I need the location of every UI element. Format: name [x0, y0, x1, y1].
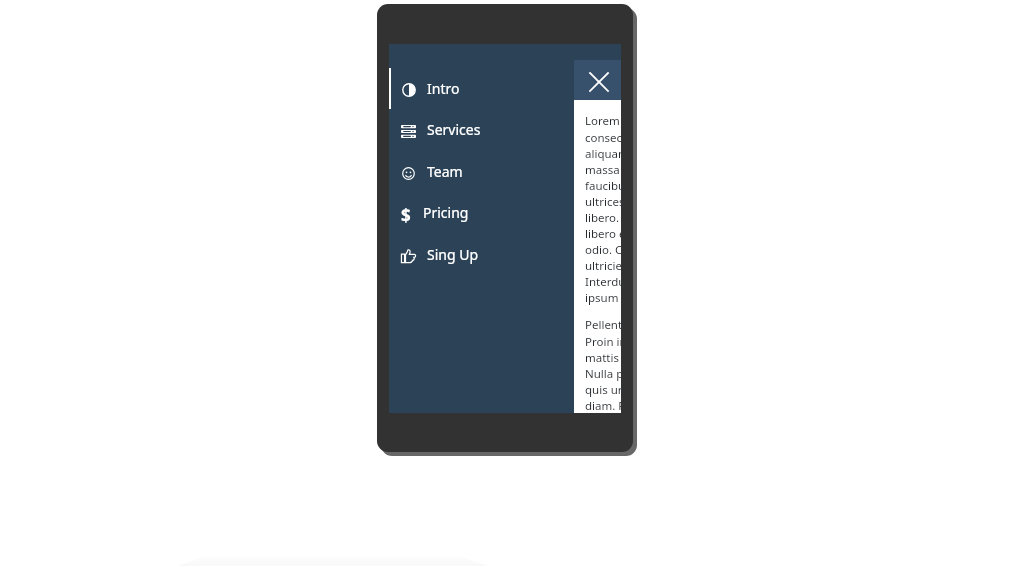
- button[interactable]: $: [389, 191, 574, 233]
- button[interactable]: Intro: [389, 67, 574, 109]
- staticText: Team: [427, 162, 463, 181]
- staticText: Intro: [427, 79, 460, 98]
- button[interactable]: Services: [389, 108, 574, 150]
- staticText: Services: [427, 120, 481, 139]
- staticText: $: [401, 204, 411, 224]
- button[interactable]: Team: [389, 150, 574, 192]
- staticText: Sing Up: [427, 245, 479, 264]
- staticText: Lorem ipsum dolor sit amet, consectetur …: [585, 113, 621, 305]
- button[interactable]: Close menu: [574, 60, 621, 100]
- staticText: Pellentesque habitant morbi Proin in urn…: [585, 317, 621, 413]
- button[interactable]: Sing Up: [389, 233, 574, 275]
- staticText: Pricing: [423, 203, 469, 222]
